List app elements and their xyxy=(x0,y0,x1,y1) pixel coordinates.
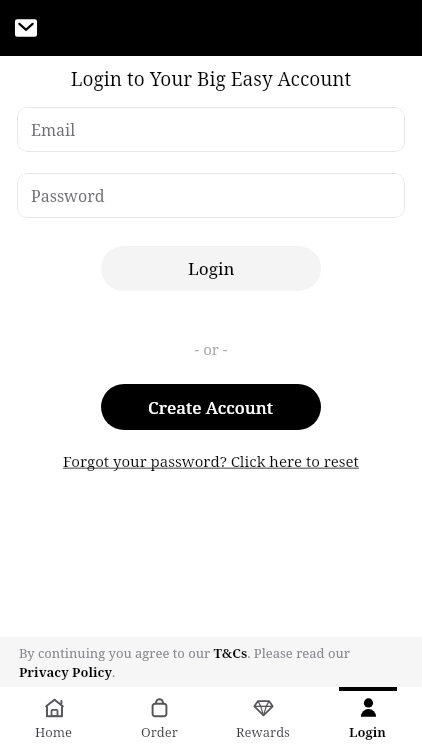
staticText: Rewards xyxy=(236,723,290,741)
button[interactable]: Home xyxy=(4,687,104,750)
staticText: Home xyxy=(35,723,73,741)
button[interactable]: Email xyxy=(17,107,405,152)
button[interactable]: Login xyxy=(318,687,418,750)
staticText: Order xyxy=(141,723,178,741)
button[interactable]: Order xyxy=(109,687,209,750)
staticText: Login xyxy=(349,723,387,741)
staticText: Create Account xyxy=(148,396,274,419)
staticText: Login to Your Big Easy Account xyxy=(0,66,422,92)
staticText: Forgot your password? Click here to rese… xyxy=(63,451,359,471)
button[interactable]: Forgot your password? Click here to rese… xyxy=(0,451,422,471)
staticText: By continuing you agree to our T&Cs. Ple… xyxy=(19,644,392,681)
staticText: Email xyxy=(31,119,76,141)
button[interactable]: Create Account xyxy=(101,384,321,430)
staticText: Login xyxy=(188,257,235,280)
button[interactable]: Rewards xyxy=(213,687,313,750)
button[interactable]: Login xyxy=(101,246,321,291)
staticText: - or - xyxy=(0,339,422,359)
button[interactable]: Password xyxy=(17,173,405,218)
staticText: Password xyxy=(31,185,105,207)
button[interactable]: Messages xyxy=(10,12,42,44)
